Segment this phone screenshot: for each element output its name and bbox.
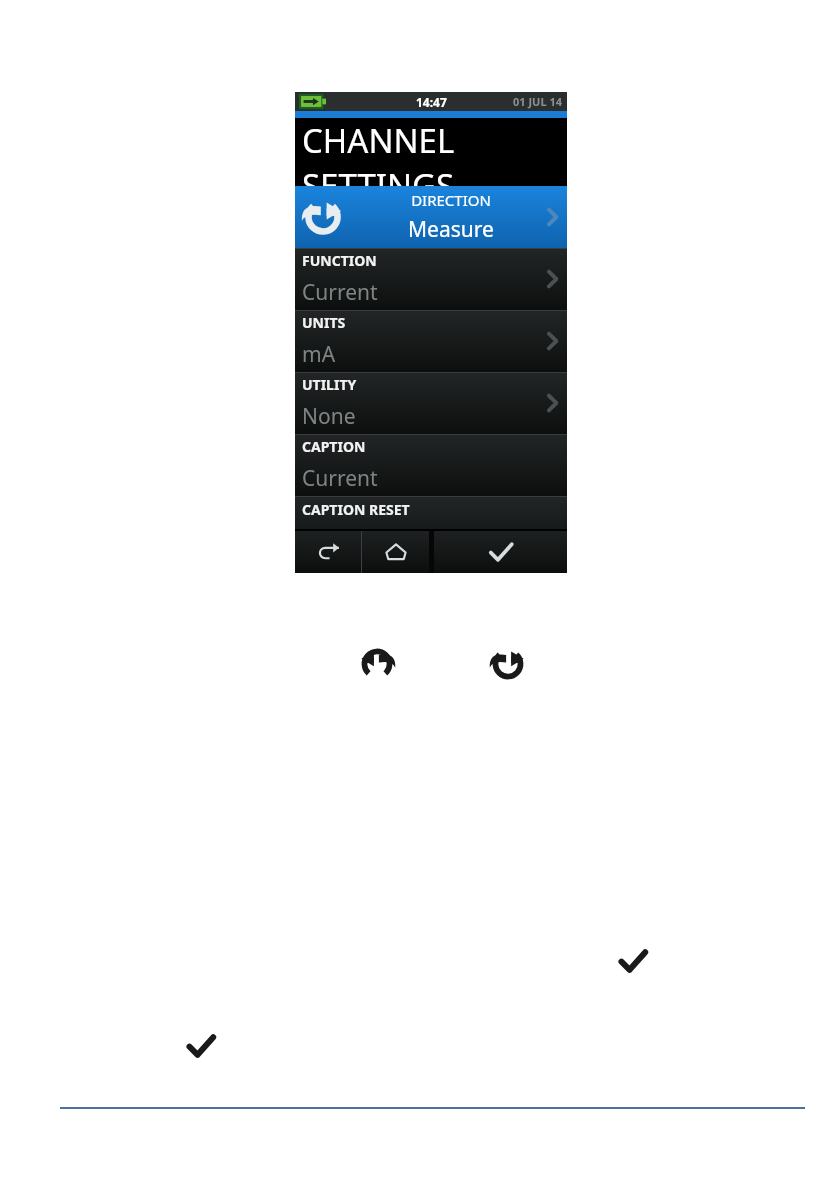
staticText: Measure: [408, 215, 494, 244]
button[interactable]: Back: [295, 531, 361, 573]
staticText: mA: [302, 340, 336, 369]
staticText: Current: [302, 278, 378, 307]
staticText: FUNCTION: [302, 251, 377, 270]
other: Measure direction: [489, 645, 527, 683]
button[interactable]: Confirm: [434, 531, 567, 573]
staticText: DIRECTION: [411, 190, 491, 210]
staticText: CHANNEL SETTINGS: [302, 118, 567, 186]
staticText: UTILITY: [302, 375, 357, 394]
button[interactable]: DIRECTION: [295, 186, 567, 248]
other: Source direction: [358, 645, 396, 683]
staticText: UNITS: [302, 313, 346, 332]
staticText: Current: [302, 464, 378, 493]
staticText: None: [302, 402, 356, 431]
staticText: 01 JUL 14: [513, 94, 562, 109]
button[interactable]: CAPTION: [295, 434, 567, 496]
button[interactable]: UNITS: [295, 310, 567, 372]
button[interactable]: FUNCTION: [295, 248, 567, 310]
staticText: 14:47: [416, 94, 447, 110]
staticText: CAPTION RESET: [302, 500, 410, 519]
button[interactable]: CAPTION RESET: [295, 496, 567, 529]
staticText: CAPTION: [302, 437, 366, 456]
button[interactable]: Home: [362, 531, 429, 573]
button[interactable]: UTILITY: [295, 372, 567, 434]
